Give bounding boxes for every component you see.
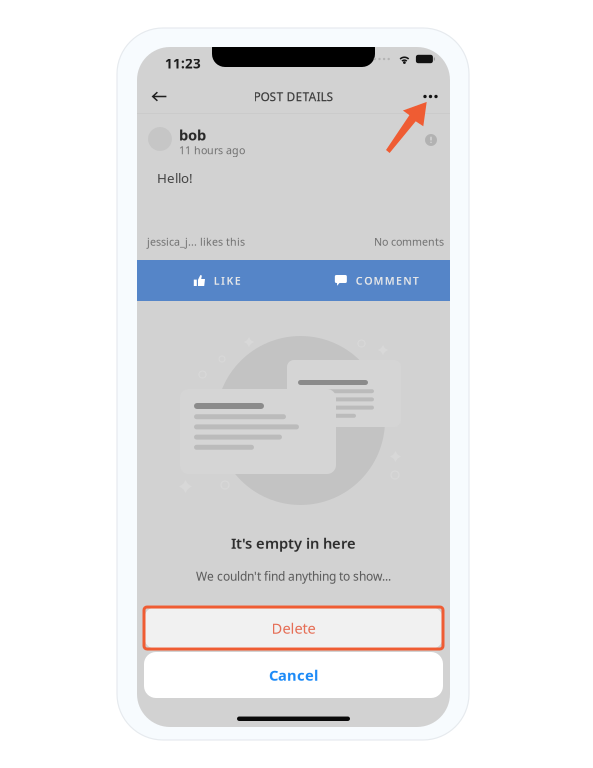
button[interactable]: LIKE [137, 260, 293, 301]
button[interactable]: Back [142, 79, 177, 114]
button[interactable]: Delete [144, 607, 443, 649]
staticText: It's empty in here [231, 533, 356, 553]
staticText: bob [179, 125, 206, 144]
button[interactable]: More options [413, 79, 448, 114]
button[interactable]: Cancel [144, 652, 443, 698]
staticText: POST DETAILS [253, 88, 333, 104]
button[interactable]: COMMENT [293, 260, 450, 301]
staticText: Delete [271, 618, 315, 638]
staticText: COMMENT [356, 273, 419, 288]
staticText: jessica_j... likes this [147, 234, 245, 249]
staticText: 11 hours ago [179, 143, 245, 157]
staticText: No comments [374, 234, 444, 249]
staticText: 11:23 [165, 54, 201, 72]
staticText: LIKE [214, 273, 241, 288]
staticText: Hello! [157, 169, 193, 187]
staticText: We couldn't find anything to show... [196, 568, 391, 584]
staticText: Cancel [269, 665, 318, 685]
